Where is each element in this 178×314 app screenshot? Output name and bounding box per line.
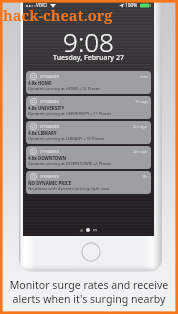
- staticText: DYNAMIK: [40, 74, 60, 80]
- staticText: 2m ago: [133, 149, 148, 154]
- button[interactable]: DYNAMIK: [26, 96, 151, 119]
- staticText: No places with dynamic pricing right now: [28, 186, 110, 192]
- button[interactable]: DYNAMIK: [26, 121, 151, 144]
- staticText: 5h: [143, 174, 148, 179]
- staticText: 4.6x DOWNTOWN: [28, 155, 67, 161]
- staticText: 4.6x UNIVERSITY: [28, 105, 65, 111]
- staticText: DYNAMIK: [40, 124, 60, 130]
- staticText: Dynamic pricing at LIBRARY +10 Places: [28, 136, 105, 142]
- staticText: Tuesday, February 27: [23, 53, 154, 63]
- staticText: Dynamic pricing at DOWNTOWN +2 Places: [28, 161, 112, 167]
- staticText: 1h ago: [135, 99, 148, 104]
- button[interactable]: DYNAMIK: [26, 171, 151, 194]
- staticText: 100%: [125, 2, 138, 9]
- button[interactable]: Home: [81, 242, 101, 262]
- staticText: DYNAMIK: [40, 174, 60, 180]
- staticText: 2m ago: [133, 124, 148, 129]
- staticText: Dynamic pricing at HOME +12 Places: [28, 86, 101, 92]
- staticText: NO DYNAMIC PRICE: [28, 180, 72, 186]
- staticText: alerts when it's surging nearby: [0, 292, 178, 306]
- staticText: VIVO: [36, 2, 48, 9]
- staticText: Monitor surge rates and receive: [0, 278, 178, 292]
- staticText: Dynamic pricing at UNIVERSITY +11 Places: [28, 111, 112, 117]
- staticText: DYNAMIK: [40, 149, 60, 155]
- staticText: 9:08: [23, 24, 154, 59]
- staticText: now: [140, 74, 148, 79]
- staticText: hack-cheat.org: [3, 5, 113, 25]
- staticText: 4.9x HOME: [28, 80, 52, 86]
- staticText: 4.6x LIBRARY: [28, 130, 57, 136]
- button[interactable]: DYNAMIK: [26, 146, 151, 169]
- staticText: DYNAMIK: [40, 99, 60, 105]
- button[interactable]: DYNAMIK: [26, 71, 151, 94]
